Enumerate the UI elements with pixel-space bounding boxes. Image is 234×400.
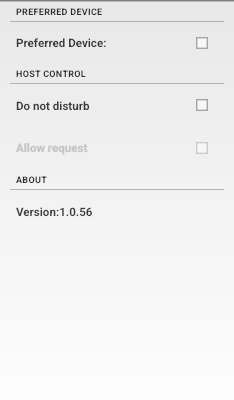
button[interactable]: Allow request bbox=[0, 125, 234, 167]
other: Allow request check box bbox=[196, 142, 208, 154]
staticText: Version:1.0.56 bbox=[16, 205, 93, 219]
staticText: HOST CONTROL bbox=[16, 69, 87, 80]
staticText: ABOUT bbox=[16, 175, 48, 186]
staticText: Preferred Device: bbox=[16, 36, 107, 50]
staticText: Do not disturb bbox=[16, 99, 90, 113]
staticText: Allow request bbox=[16, 141, 88, 155]
other: Do not disturb check box bbox=[196, 99, 208, 111]
button[interactable]: Do not disturb bbox=[0, 83, 234, 125]
other: Preferred Device: check box bbox=[196, 37, 208, 49]
button[interactable]: Preferred Device: bbox=[0, 21, 234, 63]
staticText: PREFERRED DEVICE bbox=[16, 7, 103, 18]
button[interactable]: Version:1.0.56 bbox=[0, 190, 234, 232]
